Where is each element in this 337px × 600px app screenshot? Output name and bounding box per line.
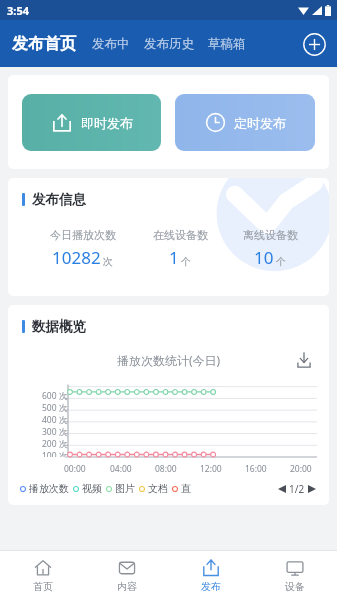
- staticText: 次: [103, 255, 113, 268]
- button[interactable]: 图片: [104, 480, 137, 497]
- button[interactable]: 发布首页: [10, 28, 78, 60]
- button[interactable]: 下载: [293, 349, 315, 371]
- staticText: 首页: [33, 580, 53, 593]
- button[interactable]: 首页: [0, 551, 85, 600]
- button[interactable]: 内容: [85, 551, 169, 600]
- staticText: 发布中: [92, 36, 130, 52]
- staticText: 1/2: [289, 482, 305, 496]
- button[interactable]: 设备: [253, 551, 337, 600]
- button[interactable]: 直: [170, 480, 193, 497]
- staticText: 1: [169, 246, 179, 269]
- staticText: 数据概览: [32, 318, 86, 335]
- staticText: 400 次: [42, 414, 68, 426]
- button[interactable]: 即时发布: [22, 94, 161, 151]
- staticText: 发布首页: [12, 34, 76, 54]
- staticText: 200 次: [42, 438, 68, 450]
- staticText: 发布信息: [32, 191, 86, 208]
- staticText: 16:00: [245, 463, 267, 475]
- button[interactable]: 发布: [169, 551, 253, 600]
- staticText: 在线设备数: [153, 228, 208, 242]
- staticText: 今日播放次数: [50, 228, 116, 242]
- button[interactable]: 新建发布: [297, 27, 331, 61]
- staticText: 发布: [201, 580, 221, 593]
- staticText: 20:00: [290, 463, 312, 475]
- staticText: 08:00: [155, 463, 177, 475]
- staticText: 3:54: [7, 3, 29, 18]
- staticText: 图片: [115, 482, 135, 495]
- staticText: 文档: [148, 482, 168, 495]
- staticText: 直: [181, 482, 191, 495]
- staticText: 100 次: [42, 450, 68, 457]
- staticText: 600 次: [42, 390, 68, 402]
- staticText: 草稿箱: [208, 36, 246, 52]
- staticText: 300 次: [42, 426, 68, 438]
- staticText: 视频: [82, 482, 102, 495]
- staticText: 离线设备数: [243, 228, 298, 242]
- staticText: 播放次数统计(今日): [117, 352, 221, 368]
- staticText: 播放次数: [29, 482, 69, 495]
- button[interactable]: 定时发布: [175, 94, 315, 151]
- button[interactable]: 草稿箱: [206, 28, 248, 60]
- staticText: 10282: [52, 246, 101, 269]
- button[interactable]: 视频: [71, 480, 104, 497]
- staticText: 发布历史: [144, 36, 194, 52]
- button[interactable]: 上一页: [275, 482, 289, 496]
- button[interactable]: 文档: [137, 480, 170, 497]
- staticText: 内容: [117, 580, 137, 593]
- button[interactable]: 播放次数: [18, 480, 71, 497]
- staticText: 10: [254, 246, 274, 269]
- staticText: 04:00: [110, 463, 132, 475]
- button[interactable]: 发布历史: [142, 28, 196, 60]
- button[interactable]: 发布中: [90, 28, 132, 60]
- button[interactable]: 下一页: [305, 482, 319, 496]
- staticText: 500 次: [42, 402, 68, 414]
- staticText: 即时发布: [81, 115, 133, 131]
- staticText: 定时发布: [234, 115, 286, 131]
- staticText: 12:00: [200, 463, 222, 475]
- staticText: 个: [276, 255, 286, 268]
- staticText: 00:00: [64, 463, 86, 475]
- staticText: 设备: [285, 580, 305, 593]
- staticText: 个: [181, 255, 191, 268]
